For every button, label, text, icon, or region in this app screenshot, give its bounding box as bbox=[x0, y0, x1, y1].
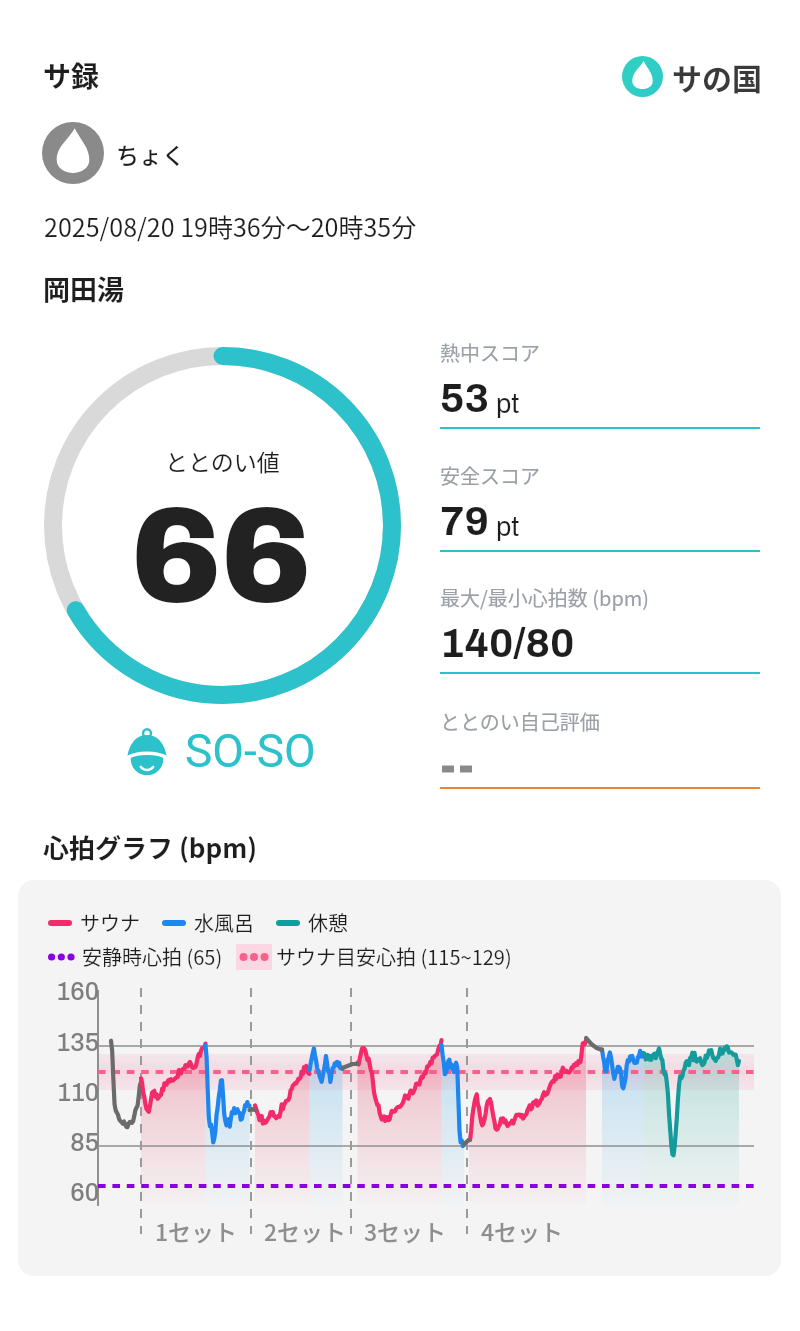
staticText: 水風呂 bbox=[194, 908, 254, 937]
staticText: ととのい自己評価 bbox=[440, 707, 600, 736]
staticText: 53 bbox=[440, 376, 489, 421]
staticText: 1セット bbox=[155, 1214, 238, 1247]
staticText: 110 bbox=[57, 1079, 99, 1106]
staticText: 最大/最小心拍数 (bpm) bbox=[440, 583, 650, 612]
staticText: 3セット bbox=[364, 1214, 447, 1247]
staticText: pt bbox=[496, 389, 520, 418]
staticText: 60 bbox=[70, 1179, 99, 1206]
staticText: 休憩 bbox=[308, 908, 348, 937]
staticText: 66 bbox=[131, 482, 312, 629]
staticText: ちょく bbox=[116, 137, 185, 170]
staticText: 2セット bbox=[264, 1214, 347, 1247]
staticText: 熱中スコア bbox=[440, 338, 540, 367]
staticText: サウナ bbox=[80, 908, 140, 937]
staticText: 85 bbox=[70, 1129, 99, 1156]
staticText: 140/80 bbox=[440, 621, 575, 666]
staticText: SO-SO bbox=[185, 724, 316, 778]
staticText: 安静時心拍 (65) bbox=[82, 942, 223, 971]
staticText: 160 bbox=[56, 978, 99, 1005]
staticText: 心拍グラフ (bpm) bbox=[43, 828, 258, 866]
staticText: サ録 bbox=[43, 55, 100, 96]
staticText: 安全スコア bbox=[440, 461, 540, 490]
staticText: 79 bbox=[440, 499, 489, 544]
staticText: サの国 bbox=[672, 55, 762, 98]
staticText: ととのい値 bbox=[165, 444, 280, 477]
staticText: pt bbox=[496, 512, 520, 541]
button[interactable]: サの国 bbox=[622, 55, 762, 98]
staticText: サウナ目安心拍 (115~129) bbox=[276, 942, 512, 971]
staticText: 4セット bbox=[481, 1214, 564, 1247]
staticText: 2025/08/20 19時36分〜20時35分 bbox=[44, 208, 417, 244]
button[interactable]: SO-SO bbox=[125, 724, 316, 778]
staticText: 岡田湯 bbox=[43, 269, 124, 308]
staticText: 135 bbox=[56, 1029, 99, 1056]
button[interactable]: ちょく bbox=[42, 122, 185, 184]
